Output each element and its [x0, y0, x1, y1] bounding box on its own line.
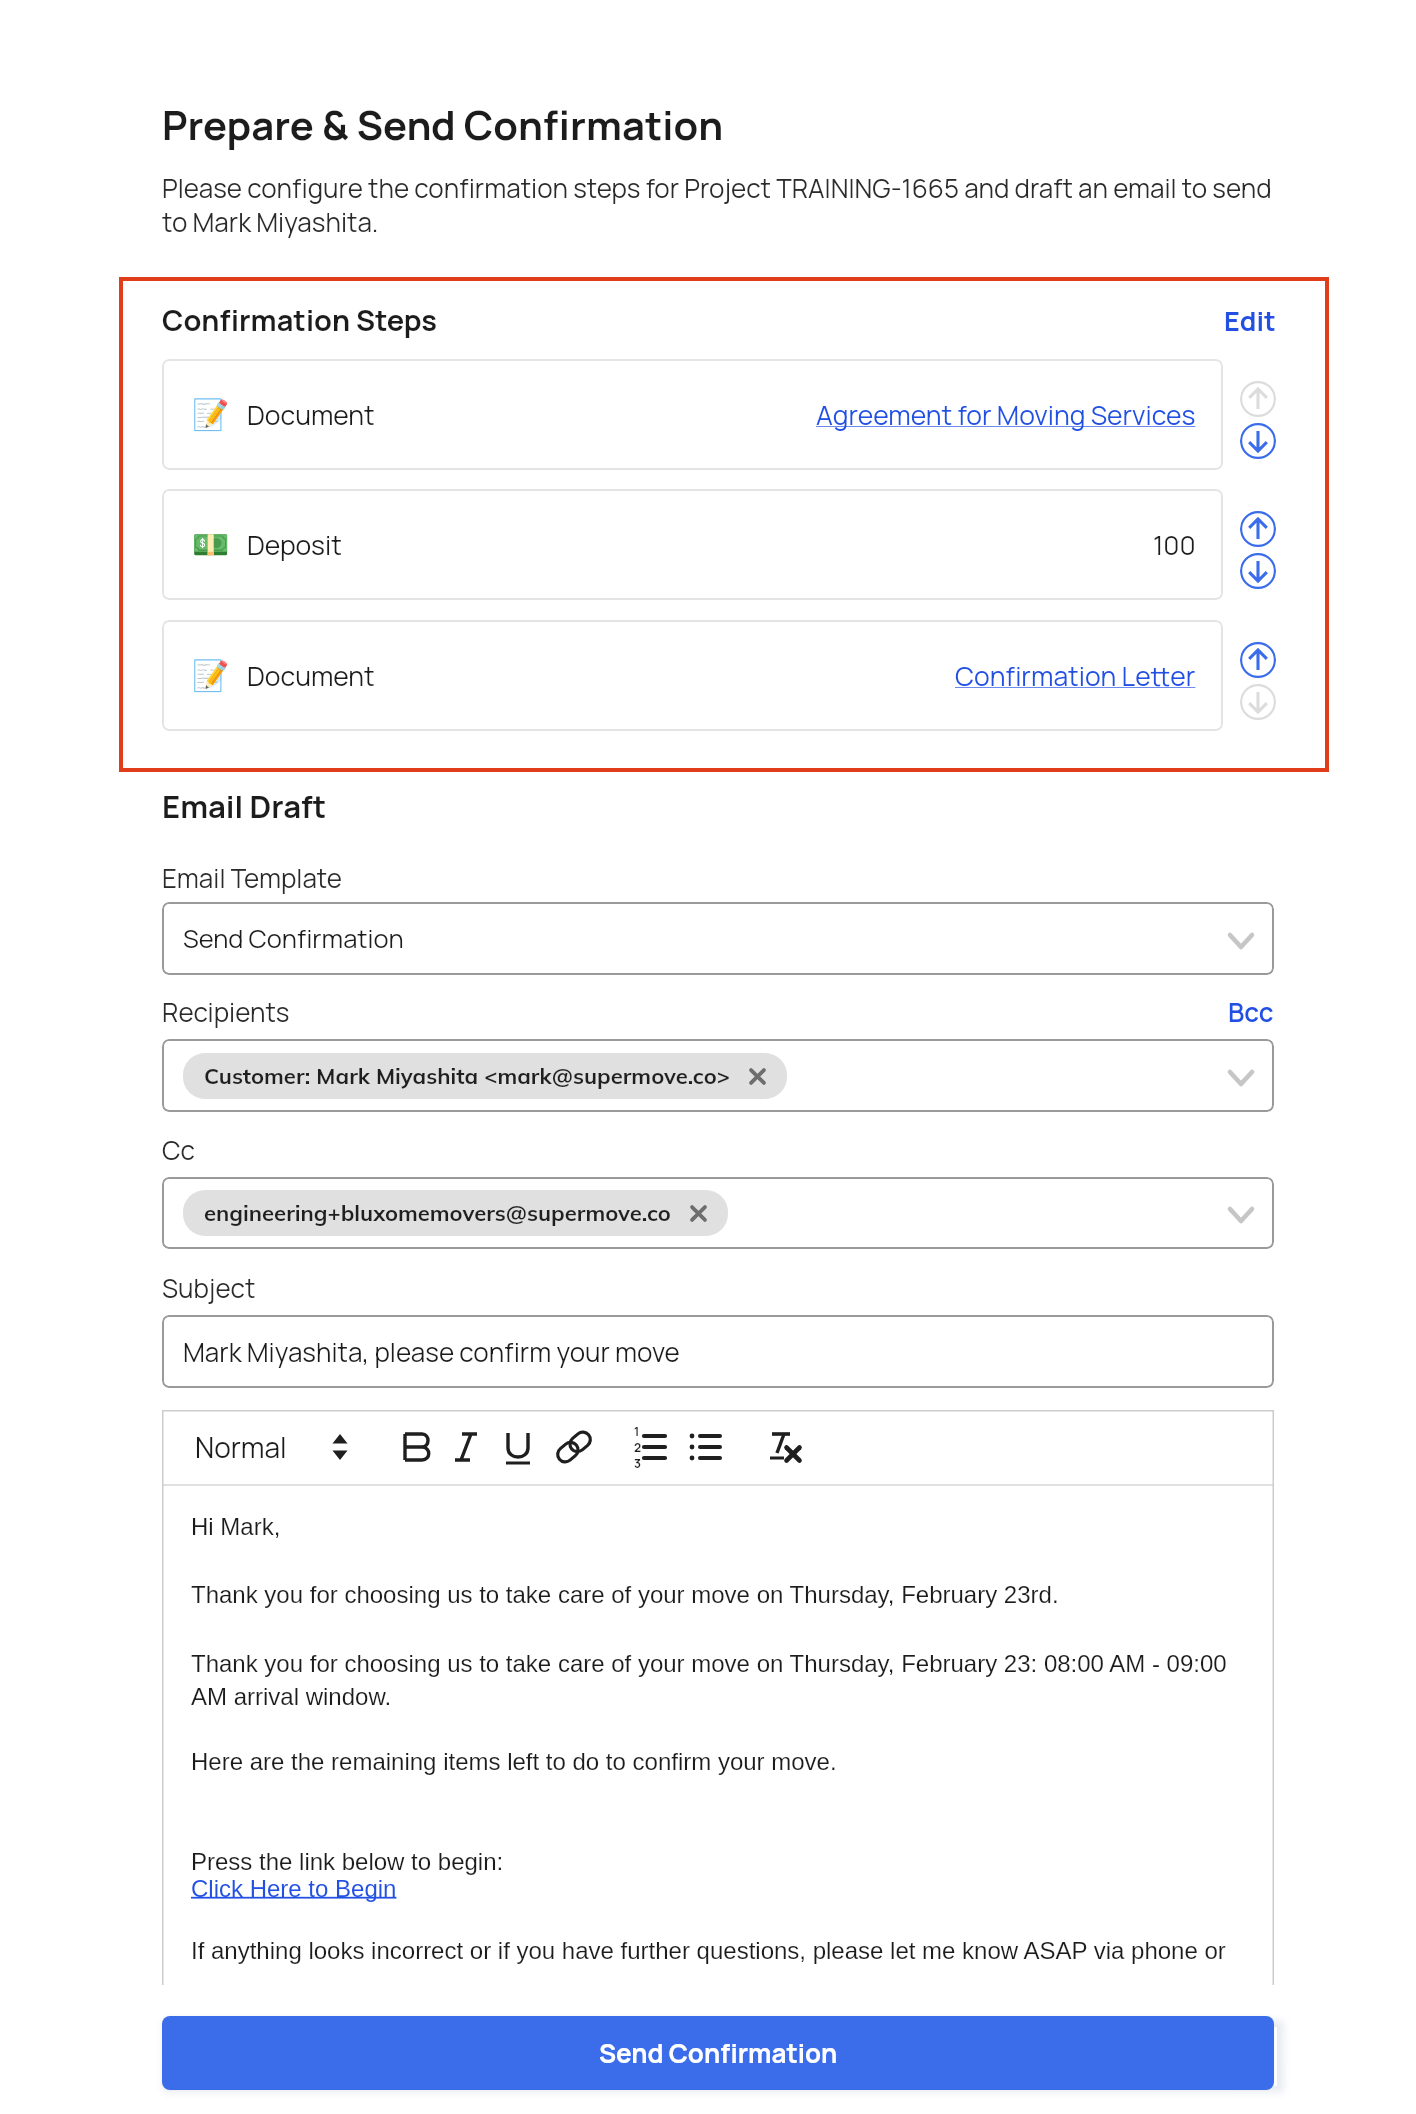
- button[interactable]: Move step up: [1240, 510, 1276, 548]
- staticText: 100: [1153, 527, 1196, 563]
- button[interactable]: Italic: [449, 1420, 483, 1474]
- button[interactable]: engineering+bluxomemovers@supermove.co: [162, 1177, 1274, 1249]
- staticText: 3: [634, 1455, 641, 1471]
- staticText: Mark Miyashita, please confirm your move: [183, 1334, 680, 1370]
- staticText: 💵: [192, 527, 230, 562]
- staticText: Confirmation Letter: [955, 658, 1196, 694]
- button[interactable]: 📝: [162, 620, 1223, 731]
- staticText: Subject: [162, 1270, 256, 1306]
- button[interactable]: Bcc: [1228, 994, 1274, 1030]
- button[interactable]: Change text size: [325, 1420, 355, 1474]
- button[interactable]: 💵: [162, 489, 1223, 600]
- staticText: 2: [634, 1439, 642, 1455]
- staticText: Thank you for choosing us to take care o…: [191, 1581, 1059, 1608]
- button[interactable]: Bulleted list: [682, 1420, 728, 1474]
- staticText: Email Template: [162, 860, 342, 896]
- staticText: Here are the remaining items left to do …: [191, 1748, 837, 1775]
- button[interactable]: Move step up: [1240, 380, 1276, 418]
- staticText: Hi Mark,: [191, 1513, 281, 1540]
- staticText: Document: [247, 397, 375, 433]
- button[interactable]: Numbered list: [622, 1420, 676, 1474]
- button[interactable]: Mark Miyashita, please confirm your move: [162, 1315, 1274, 1388]
- staticText: 1: [634, 1423, 640, 1439]
- staticText: Recipients: [162, 994, 290, 1030]
- button[interactable]: Clear formatting: [760, 1420, 806, 1474]
- staticText: Document: [247, 658, 375, 694]
- staticText: Email Draft: [162, 785, 327, 827]
- staticText: Cc: [162, 1132, 195, 1168]
- button[interactable]: Move step down: [1240, 552, 1276, 590]
- button[interactable]: Customer: Mark Miyashita <mark@supermove…: [183, 1053, 787, 1099]
- button[interactable]: Send Confirmation: [162, 902, 1274, 975]
- button[interactable]: Insert link: [550, 1420, 598, 1474]
- button[interactable]: Move step up: [1240, 641, 1276, 679]
- staticText: Please configure the confirmation steps …: [162, 170, 1274, 240]
- staticText: Send Confirmation: [599, 2035, 838, 2071]
- button[interactable]: Send Confirmation: [162, 2016, 1274, 2090]
- staticText: engineering+bluxomemovers@supermove.co: [204, 1199, 671, 1227]
- button[interactable]: Edit: [1224, 302, 1276, 339]
- staticText: Confirmation Steps: [162, 300, 437, 340]
- button[interactable]: Customer: Mark Miyashita <mark@supermove…: [162, 1039, 1274, 1112]
- staticText: Press the link below to begin:: [191, 1848, 504, 1875]
- staticText: Click Here to Begin: [191, 1875, 397, 1902]
- button[interactable]: 📝: [162, 359, 1223, 470]
- button[interactable]: engineering+bluxomemovers@supermove.co: [183, 1190, 728, 1236]
- button[interactable]: Bold: [398, 1420, 432, 1474]
- staticText: Deposit: [247, 527, 342, 563]
- staticText: 📝: [192, 397, 230, 432]
- staticText: Customer: Mark Miyashita <mark@supermove…: [204, 1062, 730, 1090]
- staticText: Normal: [195, 1428, 287, 1466]
- staticText: If anything looks incorrect or if you ha…: [191, 1937, 1226, 1964]
- staticText: 📝: [192, 658, 230, 693]
- button[interactable]: Underline: [500, 1420, 536, 1474]
- staticText: Bcc: [1228, 994, 1274, 1030]
- staticText: Prepare & Send Confirmation: [162, 97, 724, 152]
- button[interactable]: Move step down: [1240, 683, 1276, 721]
- button[interactable]: Move step down: [1240, 422, 1276, 460]
- staticText: Edit: [1224, 302, 1276, 339]
- staticText: Send Confirmation: [183, 921, 404, 956]
- staticText: Thank you for choosing us to take care o…: [191, 1650, 1246, 1710]
- staticText: Agreement for Moving Services: [816, 397, 1196, 433]
